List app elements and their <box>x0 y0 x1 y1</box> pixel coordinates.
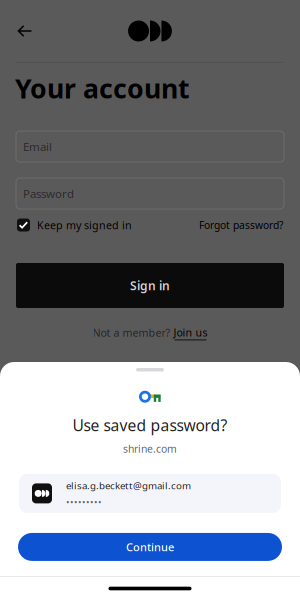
staticText: shrine.com <box>123 442 177 456</box>
button[interactable]: Continue <box>0 533 300 561</box>
button[interactable]: Sign in <box>0 263 300 308</box>
staticText: ••••••••• <box>66 495 102 508</box>
staticText: Your account <box>15 70 190 106</box>
staticText: Sign in <box>130 277 170 294</box>
staticText: Forgot password? <box>199 218 283 232</box>
staticText: Email <box>23 139 52 154</box>
button[interactable]: elisa.g.beckett@gmail.com <box>0 474 300 513</box>
staticText: Not a member? <box>92 325 170 340</box>
button[interactable]: Join us <box>173 325 207 340</box>
button[interactable]: Keep my signed in <box>17 215 132 235</box>
staticText: Password <box>23 186 74 201</box>
staticText: elisa.g.beckett@gmail.com <box>66 479 191 492</box>
button[interactable]: Back <box>0 16 40 46</box>
staticText: Keep my signed in <box>37 218 132 232</box>
staticText: Join us <box>173 325 207 339</box>
button[interactable]: Forgot password? <box>199 215 283 235</box>
staticText: Use saved password? <box>72 414 227 436</box>
staticText: Continue <box>126 539 174 554</box>
